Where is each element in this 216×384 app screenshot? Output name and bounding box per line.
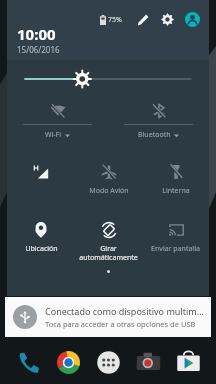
button[interactable]: Location on — [7, 214, 75, 270]
staticText: Bluetooth — [138, 130, 171, 140]
staticText: Ubicación — [25, 244, 58, 254]
staticText: Toca para acceder a otras opciones de US… — [45, 319, 196, 329]
button[interactable]: User profile — [183, 10, 202, 29]
staticText: Modo Avión — [89, 186, 129, 196]
staticText: 75% — [108, 15, 122, 25]
staticText: Wi-Fi — [45, 130, 62, 140]
button[interactable]: Chrome — [48, 350, 88, 375]
button[interactable]: Settings — [158, 10, 177, 29]
button[interactable]: Brightness — [7, 60, 209, 98]
button[interactable]: Edit — [133, 10, 152, 29]
button[interactable]: Auto rotate — [75, 214, 142, 270]
staticText: Enviar pantalla — [151, 244, 200, 254]
button[interactable]: 10:00 — [17, 24, 60, 55]
button[interactable]: Airplane mode off — [75, 156, 142, 214]
button[interactable]: Cast screen — [142, 214, 209, 270]
staticText: 15/06/2016 — [17, 44, 60, 55]
button[interactable]: Wi-Fi off — [7, 98, 108, 156]
button[interactable]: Battery 75 percent — [99, 15, 123, 25]
button[interactable]: Apps — [88, 350, 128, 375]
button[interactable]: Mobile data H — [7, 156, 75, 214]
staticText: Girar automáticamente — [79, 244, 138, 262]
button[interactable]: Camera — [128, 350, 168, 375]
button[interactable]: Conectado como dispositivo multim… — [5, 297, 211, 337]
staticText: Linterna — [162, 186, 190, 196]
button[interactable]: Phone — [8, 350, 48, 375]
button[interactable]: Bluetooth off — [108, 98, 209, 156]
button[interactable]: Play Store — [168, 350, 208, 375]
staticText: Conectado como dispositivo multim… — [45, 305, 204, 317]
staticText: 10:00 — [17, 24, 56, 44]
button[interactable]: Flashlight off — [142, 156, 209, 214]
